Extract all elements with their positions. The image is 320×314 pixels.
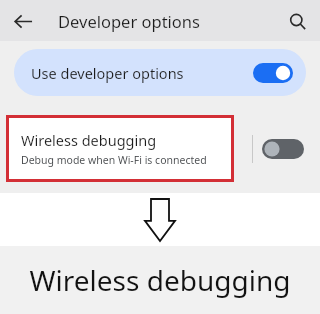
staticText: Developer options bbox=[58, 10, 200, 32]
staticText: Wireless debugging bbox=[21, 130, 157, 150]
staticText: Debug mode when Wi-Fi is connected bbox=[21, 153, 207, 167]
button[interactable]: Search bbox=[280, 4, 314, 38]
button[interactable]: Wireless debugging bbox=[6, 115, 234, 182]
staticText: Use developer options bbox=[31, 63, 253, 83]
button[interactable]: Back bbox=[6, 4, 40, 38]
button[interactable]: Use developer options bbox=[14, 49, 306, 96]
staticText: Wireless debugging bbox=[0, 261, 320, 299]
button[interactable]: Wireless debugging toggle bbox=[259, 132, 307, 166]
